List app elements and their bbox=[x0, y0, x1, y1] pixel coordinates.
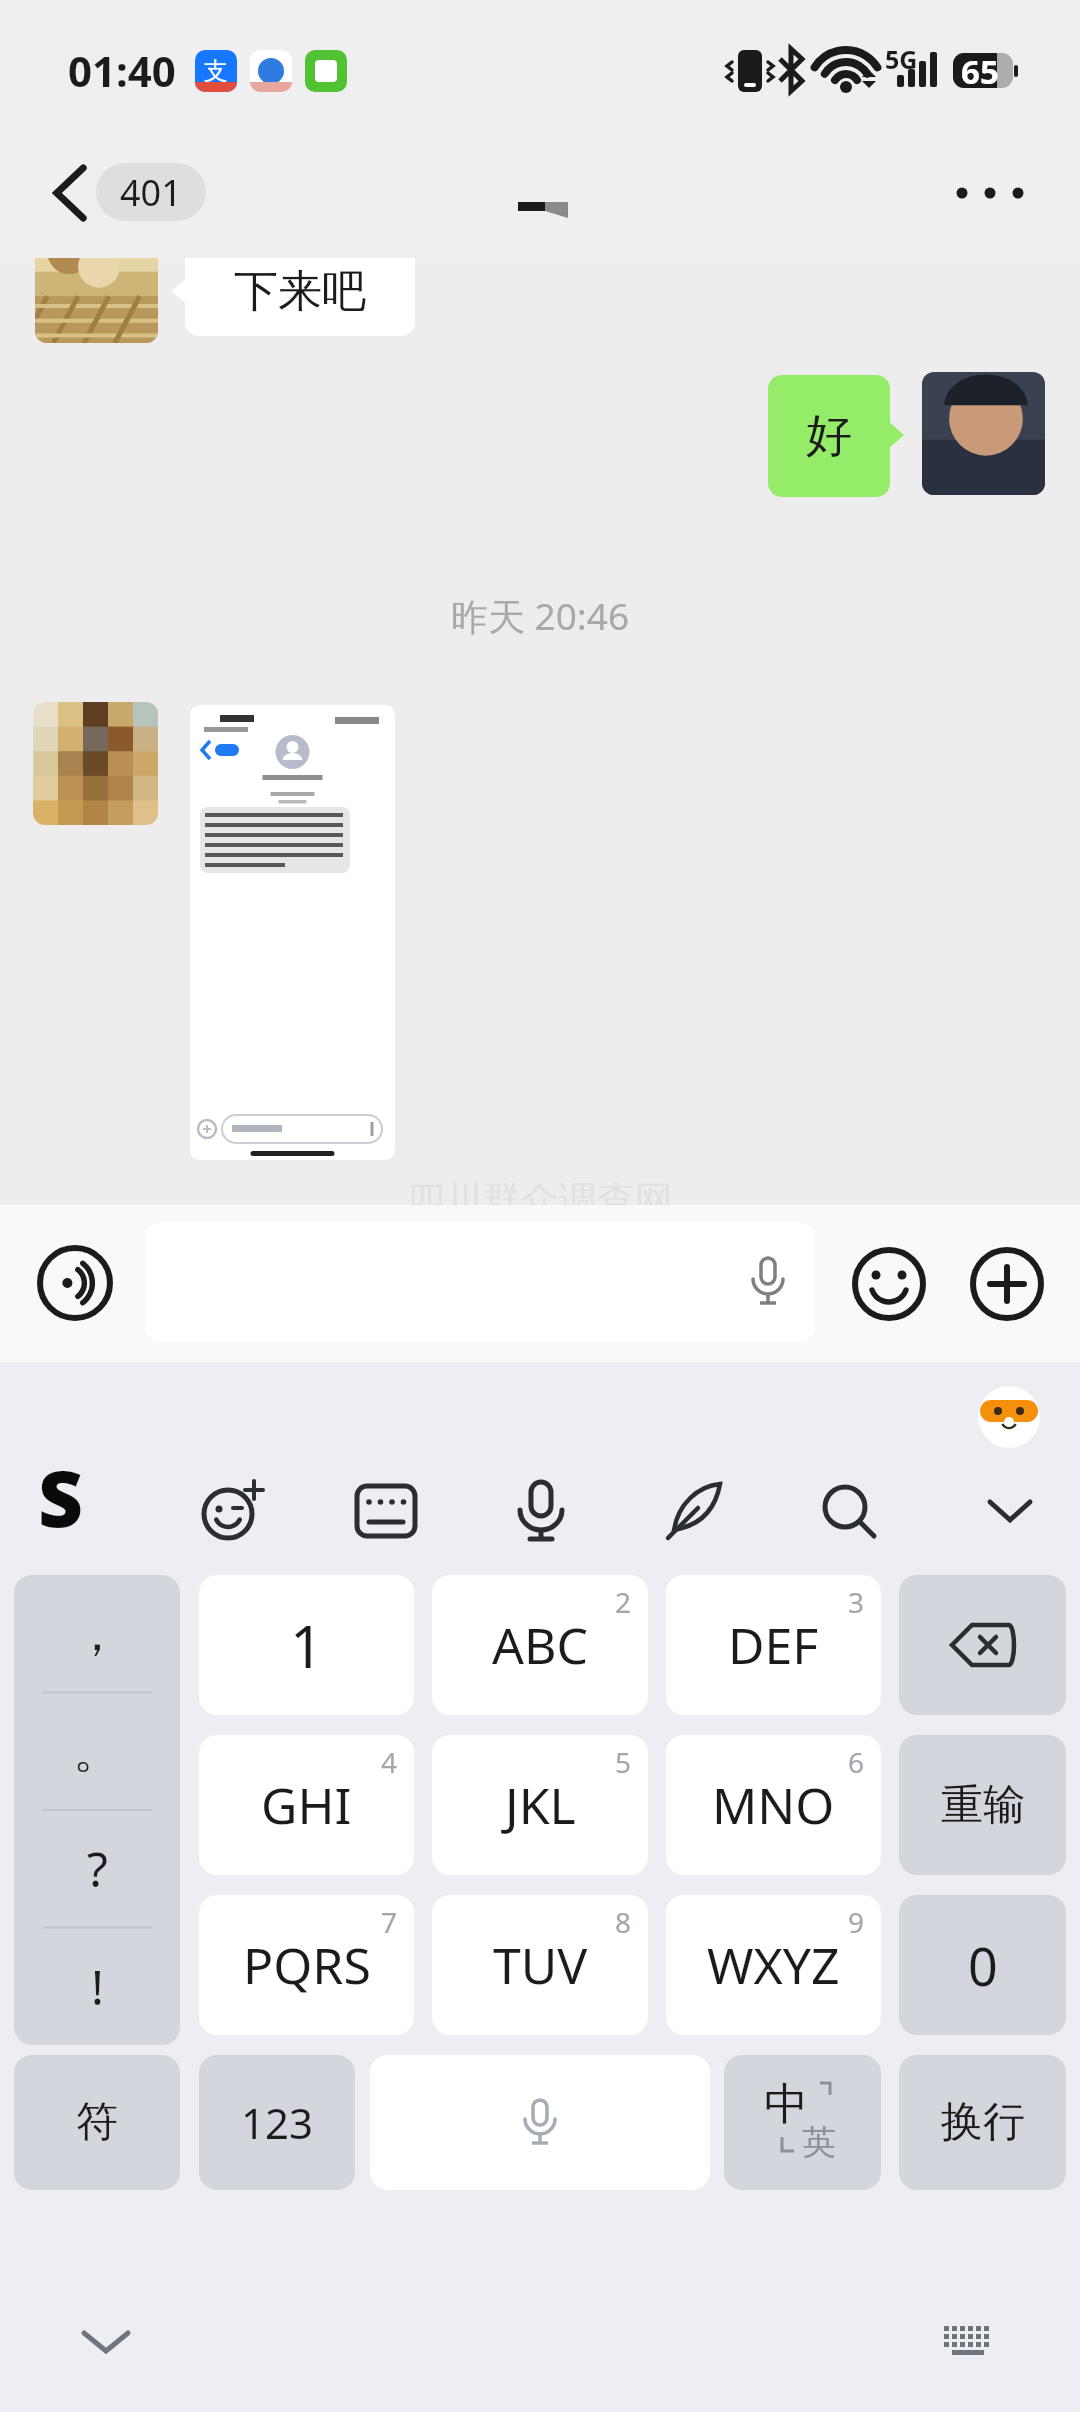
button[interactable]: ， bbox=[14, 1575, 180, 2045]
staticText: 0 bbox=[968, 1930, 998, 2001]
staticText: 123 bbox=[241, 2094, 314, 2151]
button[interactable]: 0 bbox=[899, 1895, 1066, 2035]
button[interactable] bbox=[202, 1480, 264, 1542]
button[interactable]: 下来吧 bbox=[185, 258, 415, 336]
button[interactable]: GHI bbox=[199, 1735, 414, 1875]
staticText: 9 bbox=[848, 1903, 865, 1941]
button[interactable] bbox=[982, 1480, 1042, 1540]
button[interactable]: 123 bbox=[199, 2055, 355, 2190]
staticText: DEF bbox=[728, 1611, 819, 1679]
button[interactable] bbox=[970, 1247, 1044, 1321]
button[interactable] bbox=[40, 160, 100, 226]
staticText: 01:40 bbox=[68, 42, 176, 99]
staticText: 换行 bbox=[941, 2096, 1025, 2149]
button[interactable]: 中 bbox=[724, 2055, 881, 2190]
staticText: 昨天 20:46 bbox=[0, 590, 1080, 641]
button[interactable] bbox=[190, 705, 395, 1160]
button[interactable]: MNO bbox=[666, 1735, 881, 1875]
staticText: 8 bbox=[615, 1903, 632, 1941]
staticText: MNO bbox=[712, 1771, 835, 1839]
staticText: 3 bbox=[848, 1583, 865, 1621]
staticText: 下来吧 bbox=[234, 264, 366, 319]
staticText: 符 bbox=[76, 2096, 118, 2149]
staticText: 2 bbox=[615, 1583, 632, 1621]
staticText: S bbox=[38, 1444, 84, 1550]
button[interactable]: TUV bbox=[432, 1895, 648, 2035]
button[interactable]: ABC bbox=[432, 1575, 648, 1715]
button[interactable]: WXYZ bbox=[666, 1895, 881, 2035]
staticText: WXYZ bbox=[707, 1931, 840, 1999]
button[interactable] bbox=[370, 2055, 710, 2190]
staticText: 7 bbox=[381, 1903, 398, 1941]
button[interactable]: 重输 bbox=[899, 1735, 1066, 1875]
button[interactable]: 401 bbox=[96, 163, 206, 221]
staticText: 65 bbox=[961, 49, 999, 94]
staticText: ， bbox=[73, 1604, 121, 1664]
button[interactable]: DEF bbox=[666, 1575, 881, 1715]
staticText: 好 bbox=[806, 407, 852, 465]
button[interactable] bbox=[818, 1480, 880, 1542]
button[interactable]: JKL bbox=[432, 1735, 648, 1875]
staticText: 5 bbox=[615, 1743, 632, 1781]
button[interactable]: 换行 bbox=[899, 2055, 1066, 2190]
button[interactable] bbox=[852, 1247, 926, 1321]
staticText: ? bbox=[87, 1836, 108, 1901]
staticText: 支 bbox=[204, 56, 228, 86]
button[interactable] bbox=[145, 1222, 815, 1342]
button[interactable] bbox=[355, 1480, 417, 1542]
staticText: 重输 bbox=[941, 1779, 1025, 1832]
button[interactable]: 好 bbox=[768, 375, 890, 497]
staticText: 英 bbox=[802, 2121, 836, 2164]
staticText: JKL bbox=[505, 1771, 576, 1839]
staticText: ABC bbox=[492, 1611, 589, 1679]
staticText: 5G bbox=[885, 42, 918, 76]
button[interactable] bbox=[664, 1480, 726, 1542]
staticText: TUV bbox=[493, 1931, 588, 1999]
staticText: 401 bbox=[120, 168, 182, 217]
button[interactable]: 1 bbox=[199, 1575, 414, 1715]
staticText: 。 bbox=[73, 1721, 121, 1781]
button[interactable] bbox=[37, 1245, 113, 1321]
staticText: 4 bbox=[381, 1743, 398, 1781]
staticText: ! bbox=[91, 1954, 104, 2019]
button[interactable] bbox=[940, 160, 1040, 226]
staticText: 中 bbox=[764, 2077, 808, 2132]
button[interactable] bbox=[899, 1575, 1066, 1715]
staticText: GHI bbox=[261, 1771, 352, 1839]
button[interactable]: PQRS bbox=[199, 1895, 414, 2035]
button[interactable] bbox=[510, 1480, 572, 1542]
button[interactable]: 符 bbox=[14, 2055, 180, 2190]
staticText: 6 bbox=[848, 1743, 865, 1781]
staticText: PQRS bbox=[243, 1931, 371, 1999]
staticText: 1 bbox=[290, 1606, 324, 1685]
